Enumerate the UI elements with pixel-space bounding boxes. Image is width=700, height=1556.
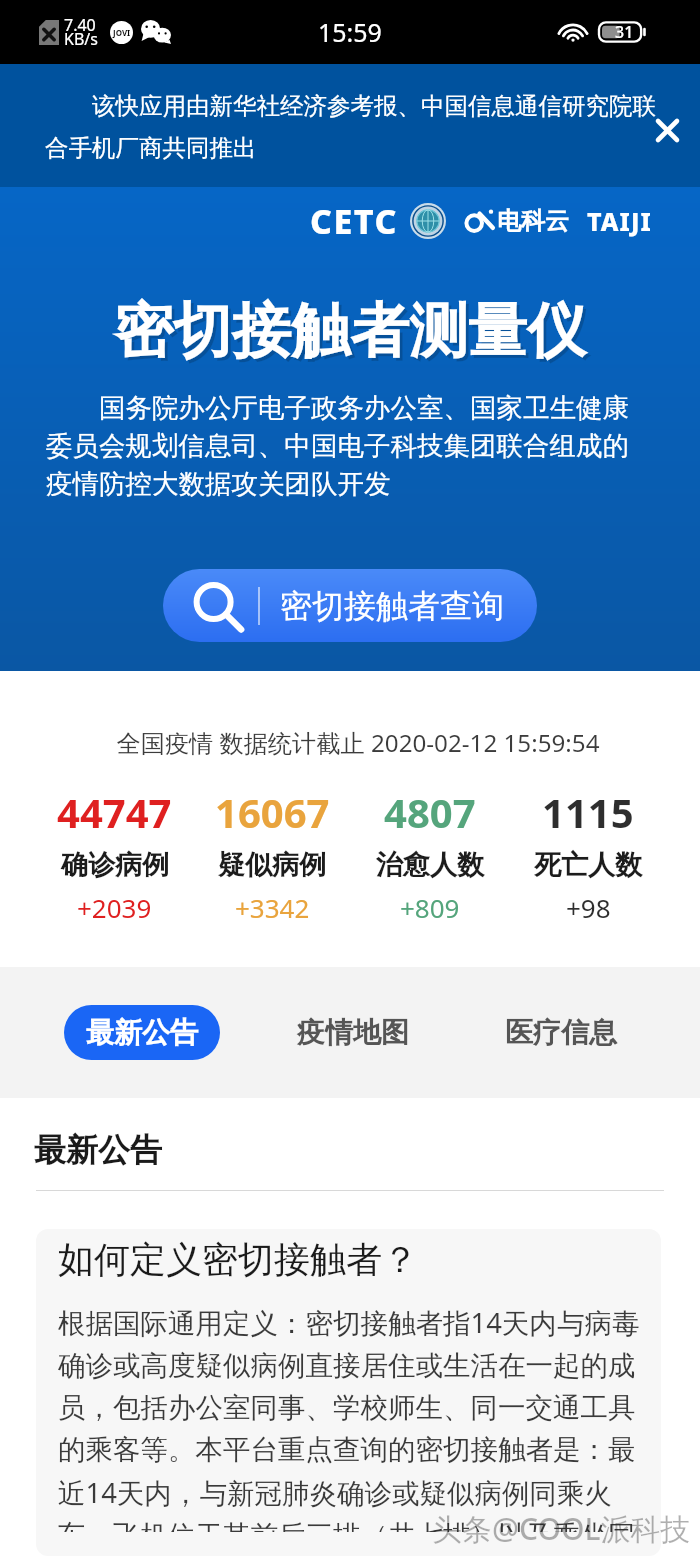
- staticText: 全国疫情 数据统计截止 2020-02-12 15:59:54: [16, 726, 700, 759]
- staticText: 死亡人数: [534, 848, 642, 882]
- staticText: +98: [566, 890, 611, 925]
- staticText: TAIJI: [587, 204, 652, 238]
- staticText: 密切接触者测量仪: [0, 294, 700, 368]
- button[interactable]: Close banner: [643, 106, 691, 154]
- staticText: 根据国际通用定义：密切接触者指14天内与病毒 确诊或高度疑似病例直接居住或生活在…: [58, 1304, 640, 1532]
- staticText: 密切接触者查询: [280, 586, 504, 626]
- staticText: 7.40 KB/s: [64, 14, 98, 50]
- staticText: 国务院办公厅电子政务办公室、国家卫生健康 委员会规划信息司、中国电子科技集团联合…: [46, 389, 654, 501]
- staticText: 头条@COOL派科技: [432, 1508, 691, 1549]
- staticText: JOVI: [113, 27, 131, 38]
- staticText: +2039: [77, 890, 152, 925]
- staticText: 4807: [384, 785, 476, 839]
- button[interactable]: 4807: [351, 785, 509, 925]
- staticText: +809: [400, 890, 460, 925]
- button[interactable]: 疫情地图: [297, 1001, 409, 1064]
- staticText: 确诊病例: [61, 848, 169, 882]
- button[interactable]: 医疗信息: [505, 1001, 617, 1064]
- staticText: 疫情地图: [297, 1015, 409, 1050]
- staticText: 16067: [215, 785, 330, 839]
- staticText: 如何定义密切接触者？: [58, 1237, 418, 1282]
- staticText: 疑似病例: [218, 848, 326, 882]
- staticText: 44747: [57, 785, 172, 839]
- staticText: 治愈人数: [376, 848, 484, 882]
- staticText: 15:59: [318, 15, 382, 49]
- staticText: 最新公告: [86, 1015, 198, 1050]
- staticText: 电科云: [497, 206, 569, 236]
- button[interactable]: 16067: [193, 785, 351, 925]
- button[interactable]: 如何定义密切接触者？: [36, 1229, 661, 1556]
- button[interactable]: 最新公告: [64, 1005, 220, 1060]
- button[interactable]: 密切接触者查询: [163, 569, 537, 642]
- staticText: 31: [615, 21, 634, 43]
- staticText: 医疗信息: [505, 1015, 617, 1050]
- button[interactable]: 44747: [36, 785, 193, 925]
- staticText: 1115: [542, 785, 634, 839]
- staticText: 该快应用由新华社经济参考报、中国信息通信研究院联 合手机厂商共同推出: [45, 89, 656, 163]
- button[interactable]: 1115: [509, 785, 667, 925]
- staticText: CETC: [310, 198, 398, 244]
- staticText: 最新公告: [34, 1130, 162, 1170]
- staticText: 密切接触者测量仪: [3, 297, 700, 371]
- staticText: +3342: [235, 890, 310, 925]
